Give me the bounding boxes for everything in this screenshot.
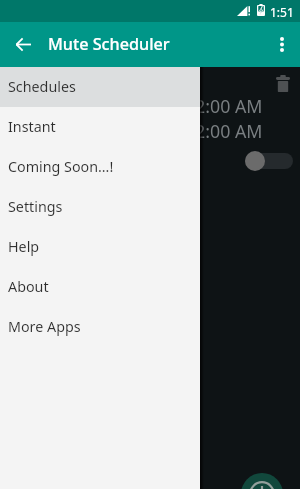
staticText: 2:00 AM [195, 94, 263, 118]
staticText: About [8, 277, 49, 296]
staticText: Mute Scheduler [48, 33, 170, 55]
button[interactable]: More Apps [0, 307, 200, 347]
button[interactable]: Help [0, 227, 200, 267]
staticText: Instant [8, 117, 56, 136]
button[interactable]: Toggle schedule [243, 148, 295, 173]
staticText: 2:00 AM [195, 119, 263, 143]
staticText: Coming Soon…! [8, 157, 114, 176]
button[interactable]: About [0, 267, 200, 307]
staticText: Schedules [8, 77, 76, 96]
staticText: Settings [8, 197, 63, 216]
button[interactable]: Coming Soon…! [0, 147, 200, 187]
staticText: Help [8, 237, 40, 256]
button[interactable]: Add schedule [241, 473, 283, 489]
staticText: More Apps [8, 317, 81, 336]
button[interactable]: Back [8, 29, 38, 59]
button[interactable]: Instant [0, 107, 200, 147]
button[interactable]: Settings [0, 187, 200, 227]
button[interactable]: Delete [271, 71, 295, 96]
button[interactable]: Schedules [0, 67, 200, 107]
button[interactable]: More options [266, 28, 298, 60]
staticText: 1:51 [270, 4, 294, 20]
